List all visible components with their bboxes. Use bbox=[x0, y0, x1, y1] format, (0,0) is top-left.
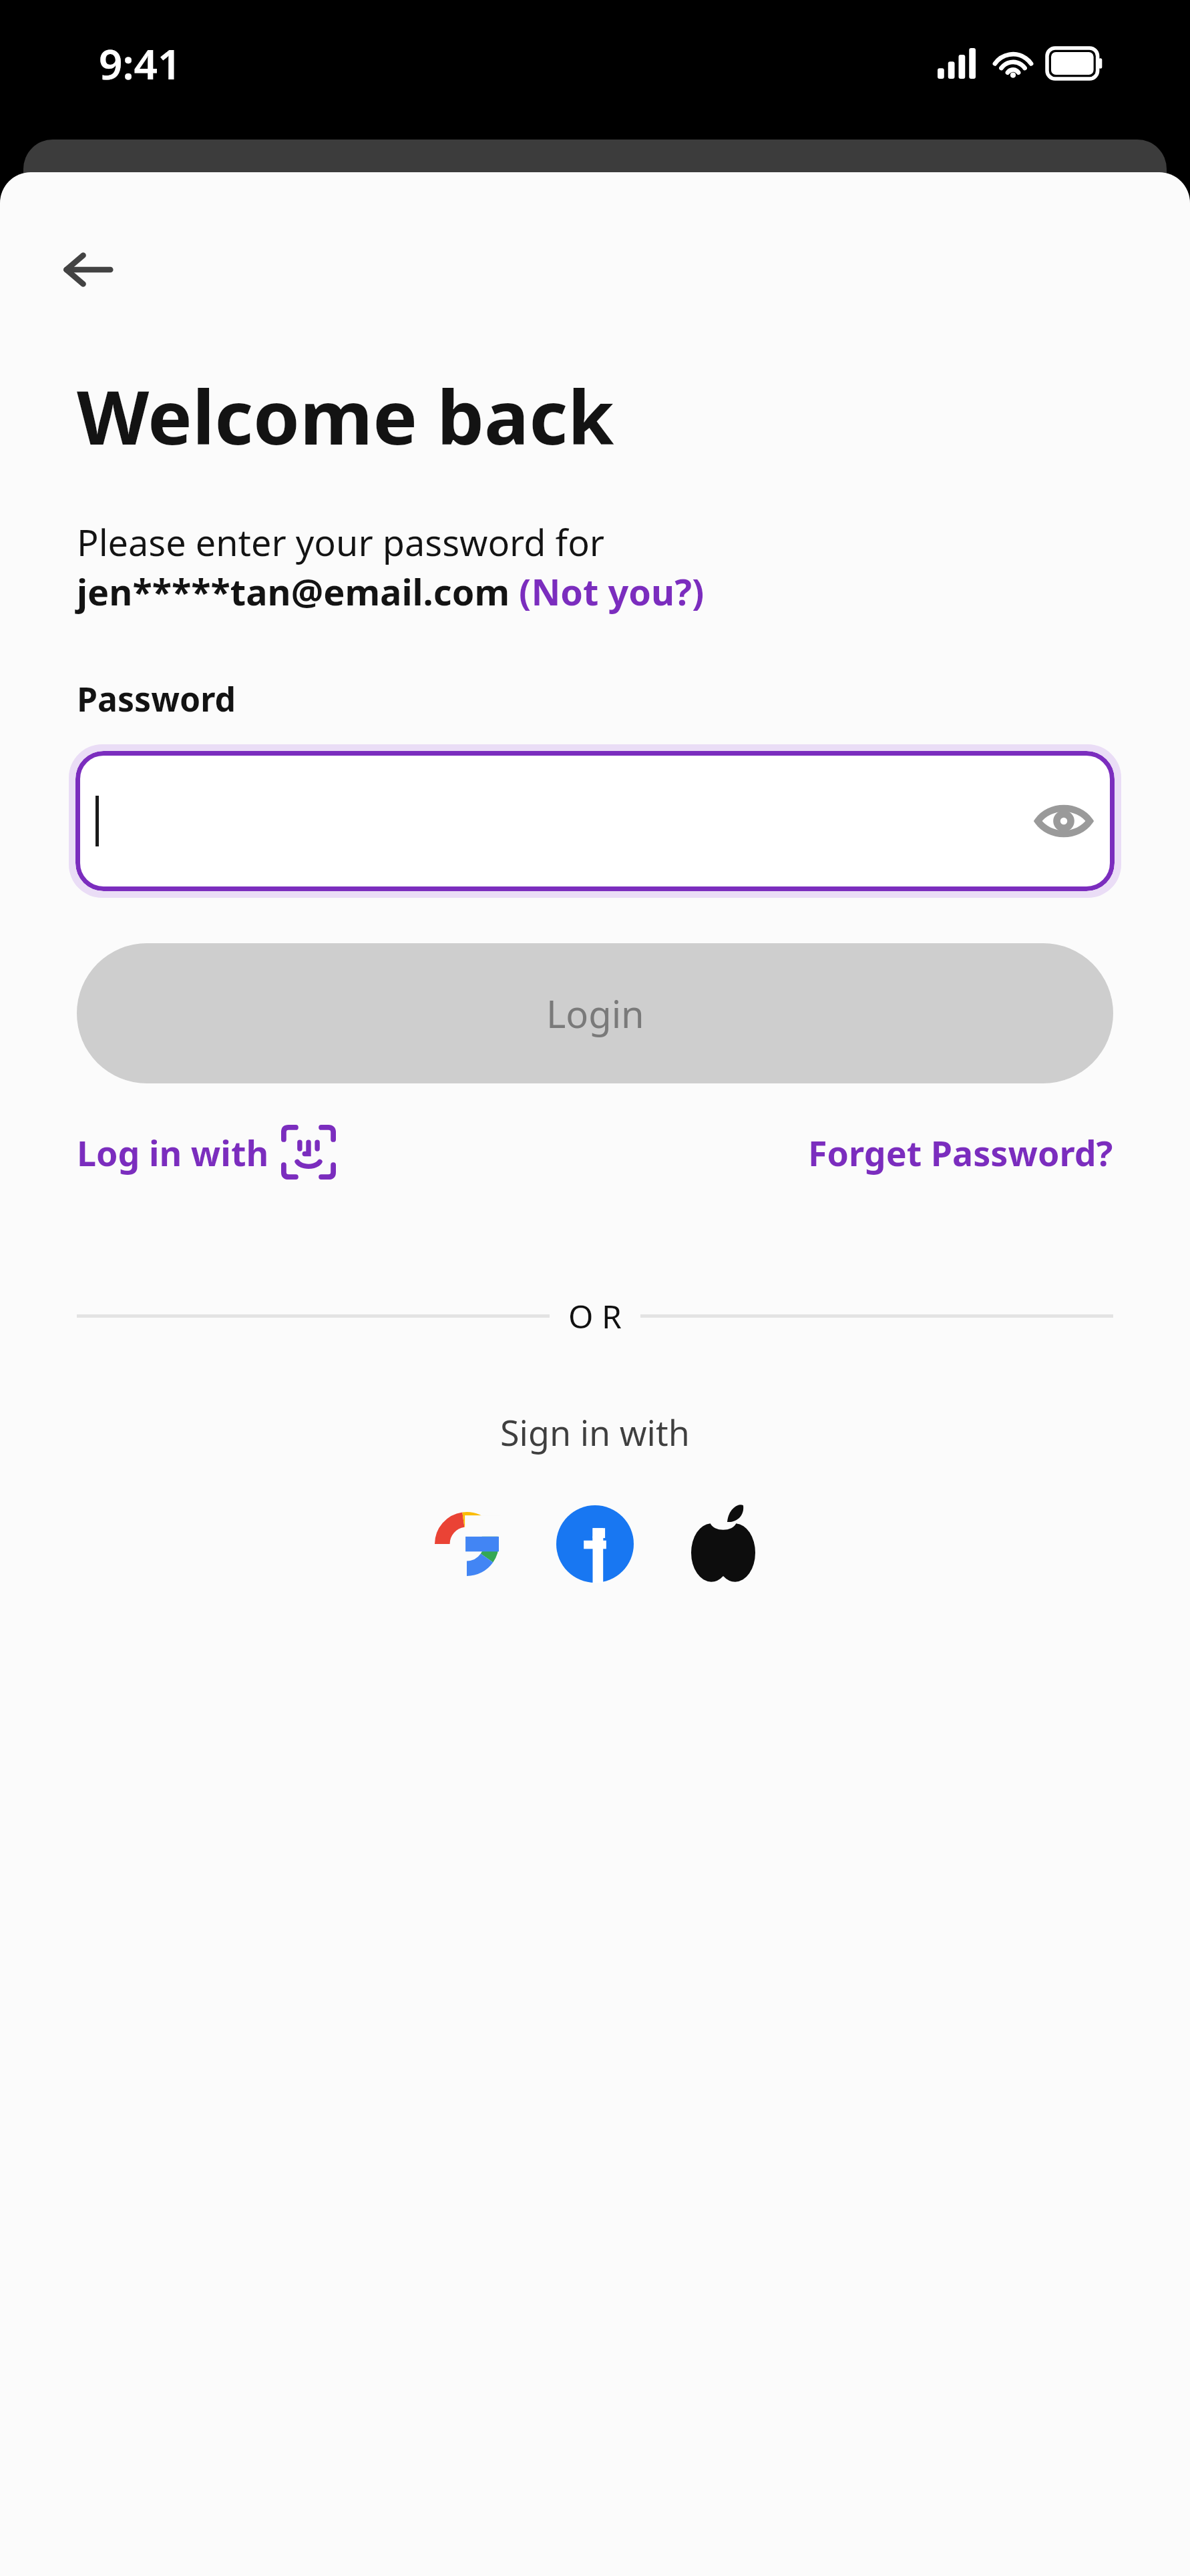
button[interactable]: Show password bbox=[1032, 789, 1096, 853]
staticText: Log in with bbox=[77, 1129, 269, 1176]
staticText: jen*****tan@email.com (Not you?) bbox=[77, 567, 705, 616]
staticText: Login bbox=[546, 988, 644, 1039]
staticText: Please enter your password for bbox=[77, 517, 605, 567]
button[interactable]: Forget Password? bbox=[808, 1129, 1113, 1176]
staticText: Password bbox=[77, 676, 236, 722]
button[interactable]: Log in with bbox=[77, 1125, 336, 1180]
staticText: Welcome back bbox=[77, 364, 614, 467]
staticText: O R bbox=[568, 1294, 622, 1338]
button[interactable]: Show password bbox=[75, 751, 1115, 891]
button[interactable]: Back bbox=[52, 234, 124, 306]
button[interactable]: Login bbox=[77, 943, 1113, 1083]
staticText: 9:41 bbox=[99, 35, 182, 91]
button[interactable]: Sign in with Apple bbox=[676, 1497, 770, 1591]
staticText: Forget Password? bbox=[808, 1129, 1113, 1176]
button[interactable]: Sign in with Facebook bbox=[548, 1497, 642, 1591]
button[interactable]: Sign in with Google bbox=[420, 1497, 514, 1591]
staticText: Sign in with bbox=[0, 1408, 1190, 1456]
